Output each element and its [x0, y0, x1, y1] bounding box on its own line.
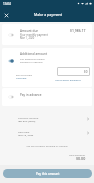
button[interactable]: $0 — [57, 67, 90, 76]
staticText: Date paid — [18, 130, 30, 133]
button[interactable]: Close — [1, 10, 11, 20]
staticText: last acct (9876) — [18, 119, 36, 122]
staticText: Additional amount — [20, 52, 48, 56]
button[interactable]: Toggle — [6, 94, 16, 100]
staticText: 13:04 — [3, 2, 11, 6]
staticText: Pay in advance — [20, 93, 42, 97]
staticText: $1,986.17 — [70, 28, 86, 33]
staticText: Amount due — [20, 29, 39, 33]
button[interactable]: Toggle — [6, 58, 16, 64]
staticText: Extra principal — [16, 73, 33, 76]
staticText: Total payment — [69, 153, 86, 156]
button[interactable]: Pay this amount — [3, 169, 92, 178]
staticText: $0 — [84, 70, 88, 74]
staticText: You are currently enrolled in AutoPay — [0, 144, 94, 147]
staticText: Your monthly payment — [20, 33, 48, 37]
button[interactable]: Payment method — [0, 113, 94, 125]
staticText: Mar 19, 2020 — [18, 133, 34, 136]
staticText: Make a payment — [34, 12, 63, 17]
staticText: Payment method — [18, 116, 39, 119]
button[interactable]: Calculate — [16, 76, 27, 79]
staticText: Pay additional toward — [20, 57, 45, 60]
staticText: payment in advance — [20, 60, 43, 63]
button[interactable]: Toggle — [6, 32, 16, 38]
staticText: Mar 1, 2020 — [20, 36, 35, 40]
button[interactable]: Add to every payment? — [55, 78, 81, 81]
staticText: Pay this amount — [36, 172, 60, 176]
button[interactable]: Date paid — [0, 127, 94, 139]
staticText: $0.00 — [76, 156, 86, 161]
